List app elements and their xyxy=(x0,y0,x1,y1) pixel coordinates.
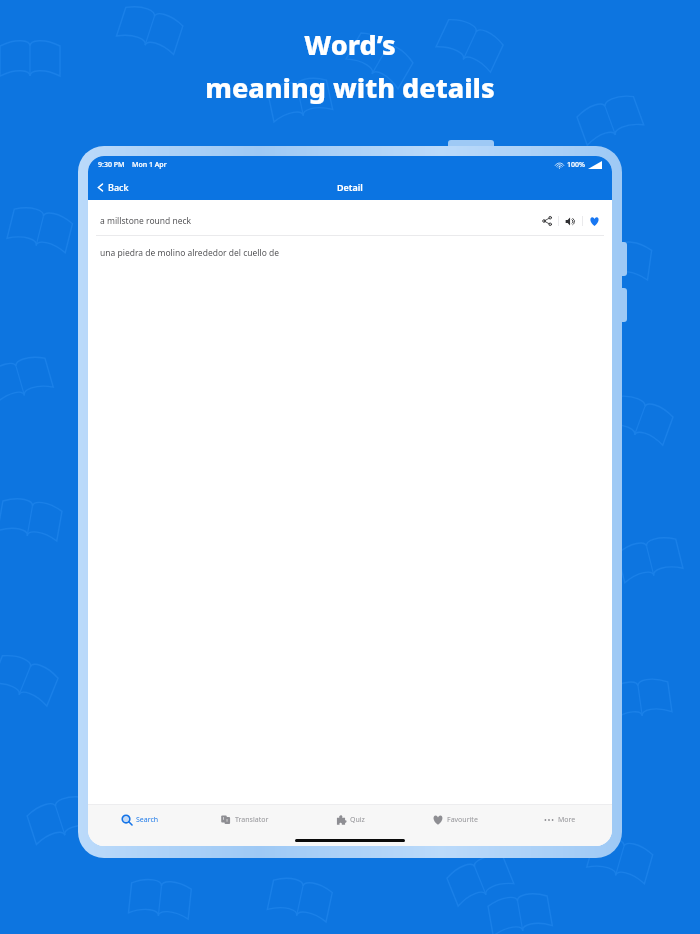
button[interactable]: Favourite xyxy=(402,805,507,835)
staticText: 100% xyxy=(567,160,585,170)
staticText: una piedra de molino alrededor del cuell… xyxy=(100,247,280,259)
button[interactable]: Favourite xyxy=(585,212,604,231)
staticText: 9:30 PM xyxy=(98,160,125,170)
staticText: Mon 1 Apr xyxy=(132,160,167,170)
staticText: Word’s xyxy=(304,26,396,63)
staticText: a millstone round neck xyxy=(100,215,538,227)
button[interactable]: Share xyxy=(538,212,556,230)
button[interactable]: More xyxy=(507,805,612,835)
button[interactable]: Translator xyxy=(192,805,297,835)
staticText: meaning with details xyxy=(205,69,495,106)
button[interactable]: Speak xyxy=(561,212,580,231)
staticText: Favourite xyxy=(447,815,478,825)
button[interactable]: Back xyxy=(88,177,137,197)
staticText: Search xyxy=(136,815,159,825)
button[interactable]: Search xyxy=(88,805,192,835)
staticText: Back xyxy=(108,181,129,193)
staticText: Quiz xyxy=(350,815,365,825)
staticText: Detail xyxy=(337,181,363,193)
staticText: More xyxy=(558,815,576,825)
staticText: Translator xyxy=(235,815,269,825)
button[interactable]: Quiz xyxy=(297,805,402,835)
